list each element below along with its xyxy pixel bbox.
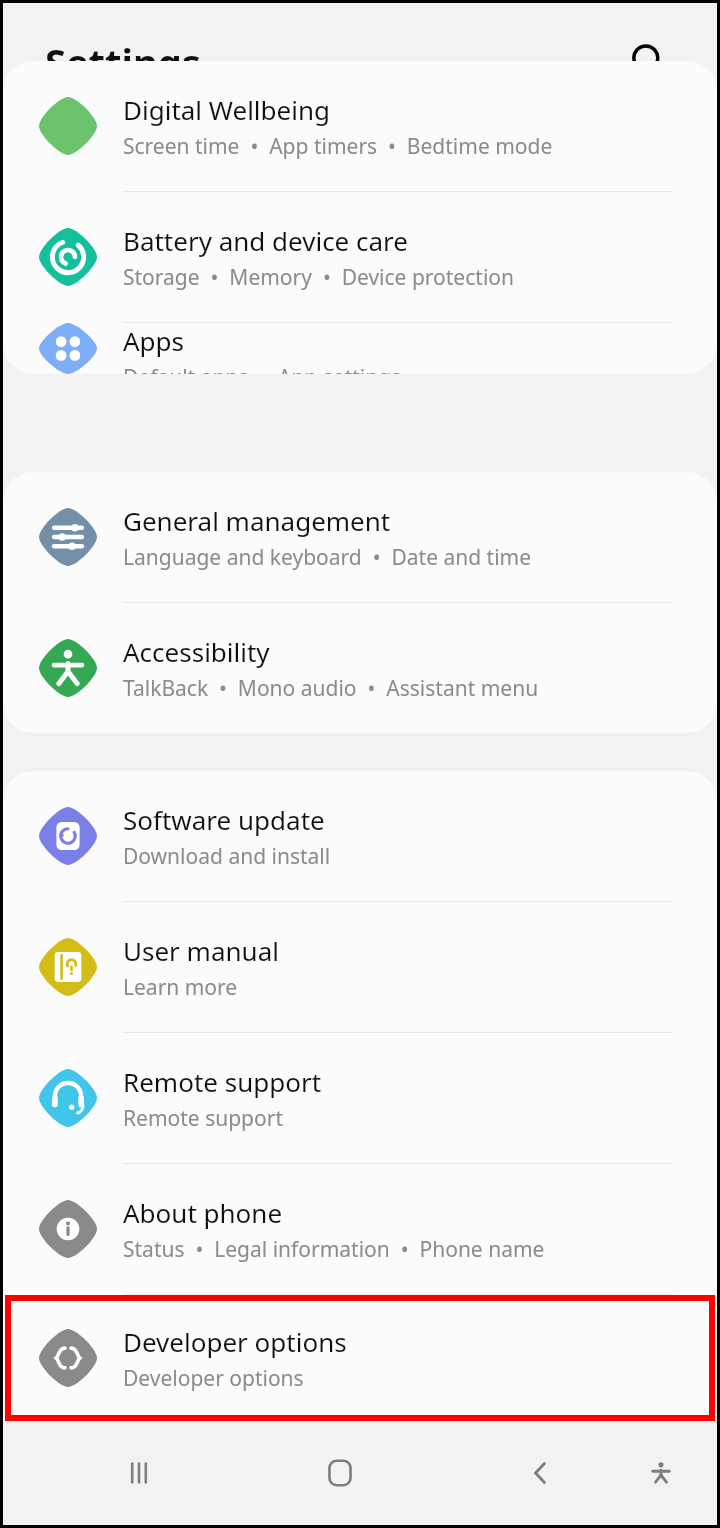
button[interactable]: Recent apps xyxy=(99,1433,179,1513)
staticText: General management xyxy=(123,503,391,538)
staticText: Download and install xyxy=(123,842,331,871)
button[interactable]: Developer options xyxy=(3,1295,717,1421)
staticText: Remote support xyxy=(123,1104,283,1133)
button[interactable]: Apps xyxy=(3,323,717,374)
button[interactable]: Battery and device care xyxy=(3,192,717,323)
staticText: Accessibility xyxy=(123,634,270,669)
button[interactable]: About phone xyxy=(3,1164,717,1295)
staticText: Remote support xyxy=(123,1064,322,1099)
button[interactable]: Back xyxy=(501,1433,581,1513)
button[interactable]: Digital Wellbeing xyxy=(3,61,717,192)
staticText: Default apps • App settings xyxy=(123,363,402,374)
button[interactable]: Home xyxy=(300,1433,380,1513)
button[interactable]: User manual xyxy=(3,902,717,1033)
staticText: Screen time • App timers • Bedtime mode xyxy=(123,132,553,161)
button[interactable]: Search xyxy=(617,30,681,94)
staticText: Digital Wellbeing xyxy=(123,92,330,127)
staticText: Learn more xyxy=(123,973,238,1002)
staticText: Language and keyboard • Date and time xyxy=(123,543,532,572)
staticText: Battery and device care xyxy=(123,223,408,258)
staticText: About phone xyxy=(123,1195,283,1230)
staticText: Developer options xyxy=(123,1324,347,1359)
staticText: Settings xyxy=(45,36,201,88)
button[interactable]: Software update xyxy=(3,771,717,902)
button[interactable]: Accessibility xyxy=(621,1433,701,1513)
staticText: Software update xyxy=(123,802,325,837)
staticText: Storage • Memory • Device protection xyxy=(123,263,514,292)
staticText: Developer options xyxy=(123,1364,304,1393)
button[interactable]: Remote support xyxy=(3,1033,717,1164)
button[interactable]: General management xyxy=(3,472,717,603)
staticText: Status • Legal information • Phone name xyxy=(123,1235,545,1264)
staticText: User manual xyxy=(123,933,279,968)
button[interactable]: Accessibility xyxy=(3,603,717,733)
staticText: Apps xyxy=(123,323,185,358)
staticText: TalkBack • Mono audio • Assistant menu xyxy=(123,674,539,703)
